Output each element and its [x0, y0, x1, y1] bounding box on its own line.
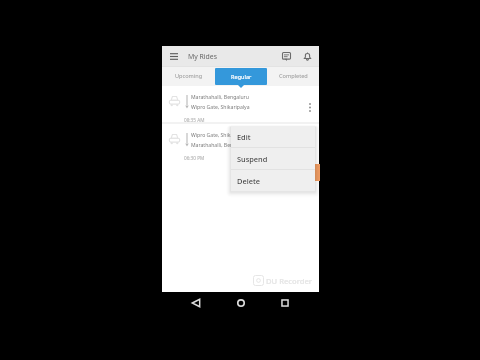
staticText: Regular — [231, 73, 252, 81]
button[interactable]: More options — [303, 135, 317, 155]
button[interactable]: Recent apps — [275, 293, 295, 313]
button[interactable]: Regular — [215, 67, 267, 85]
staticText: Suspend — [237, 154, 268, 164]
staticText: Marathahalli, Bengaluru — [191, 142, 249, 149]
staticText: Marathahalli, Bengaluru — [191, 94, 249, 101]
button[interactable]: More options — [303, 97, 317, 117]
staticText: Wipro Gate, Shikaripalya — [191, 132, 250, 139]
staticText: Completed — [279, 72, 308, 80]
button[interactable]: Wipro Gate, Shikaripalya — [162, 124, 319, 160]
button[interactable]: Recorder — [311, 164, 320, 181]
staticText: Upcoming — [175, 72, 203, 80]
button[interactable]: Edit — [231, 126, 315, 147]
staticText: Delete — [237, 176, 260, 186]
button[interactable]: Marathahalli, Bengaluru — [162, 86, 319, 122]
button[interactable]: Completed — [267, 67, 319, 85]
button[interactable]: Messages — [278, 48, 295, 65]
staticText: Wipro Gate, Shikaripalya — [191, 104, 250, 111]
staticText: 08:35 AM — [184, 117, 205, 123]
button[interactable]: Back — [186, 293, 206, 313]
button[interactable]: Notifications — [299, 48, 316, 65]
button[interactable]: Navigation menu — [165, 48, 182, 65]
button[interactable]: Upcoming — [162, 67, 215, 85]
button[interactable]: Suspend — [231, 148, 315, 169]
button[interactable]: Home — [231, 293, 251, 313]
staticText: Edit — [237, 132, 251, 142]
staticText: 06:30 PM — [184, 155, 205, 161]
staticText: My Rides — [188, 52, 218, 61]
staticText: DU Recorder — [266, 276, 312, 286]
button[interactable]: Delete — [231, 170, 315, 191]
